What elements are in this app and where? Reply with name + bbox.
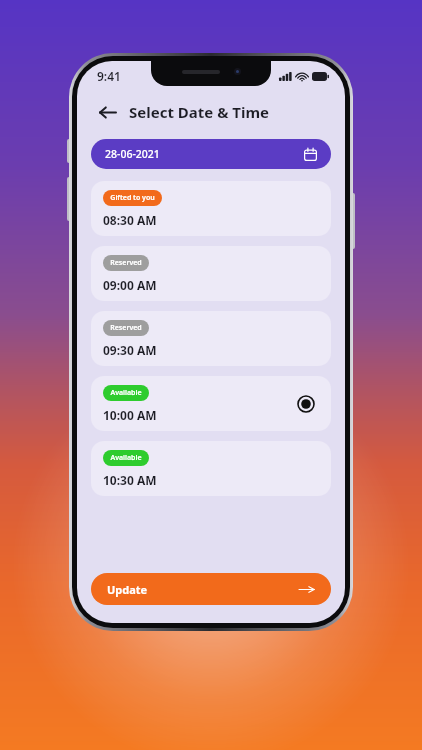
staticText: 10:00 AM — [103, 407, 157, 423]
button[interactable]: Selected time slot — [297, 395, 315, 413]
button[interactable]: Back — [93, 98, 121, 126]
button[interactable]: Update — [91, 573, 331, 605]
button[interactable]: Available — [91, 376, 331, 431]
staticText: Update — [107, 582, 148, 597]
staticText: 09:30 AM — [103, 342, 157, 358]
staticText: Reserved — [110, 323, 142, 333]
button[interactable]: Gifted to you — [91, 181, 331, 236]
staticText: Select Date & Time — [129, 102, 269, 122]
button[interactable]: Available — [91, 441, 331, 496]
staticText: 09:00 AM — [103, 277, 157, 293]
staticText: 28-06-2021 — [105, 147, 160, 161]
staticText: Available — [110, 453, 142, 463]
staticText: Reserved — [110, 258, 142, 268]
button[interactable]: Reserved — [91, 246, 331, 301]
button[interactable]: Reserved — [91, 311, 331, 366]
staticText: Gifted to you — [110, 193, 155, 203]
button[interactable]: 28-06-2021 — [91, 139, 331, 169]
staticText: 08:30 AM — [103, 212, 157, 228]
staticText: Available — [110, 388, 142, 398]
staticText: 9:41 — [97, 68, 121, 84]
staticText: 10:30 AM — [103, 472, 157, 488]
